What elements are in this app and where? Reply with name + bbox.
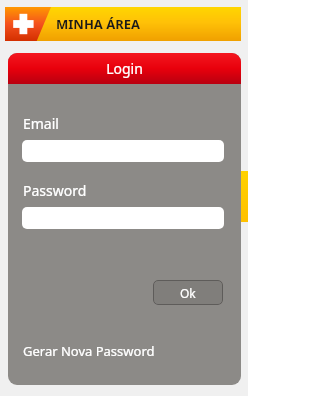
staticText: Password (23, 181, 87, 200)
button[interactable] (22, 207, 224, 229)
staticText: Email (23, 114, 59, 133)
staticText: Login (106, 59, 143, 78)
staticText: Ok (180, 285, 196, 301)
button[interactable]: MINHA ÁREA (5, 7, 241, 41)
button[interactable] (22, 140, 224, 162)
staticText: MINHA ÁREA (56, 15, 141, 33)
button[interactable]: Ok (153, 280, 223, 305)
button[interactable]: Gerar Nova Password (23, 342, 155, 360)
